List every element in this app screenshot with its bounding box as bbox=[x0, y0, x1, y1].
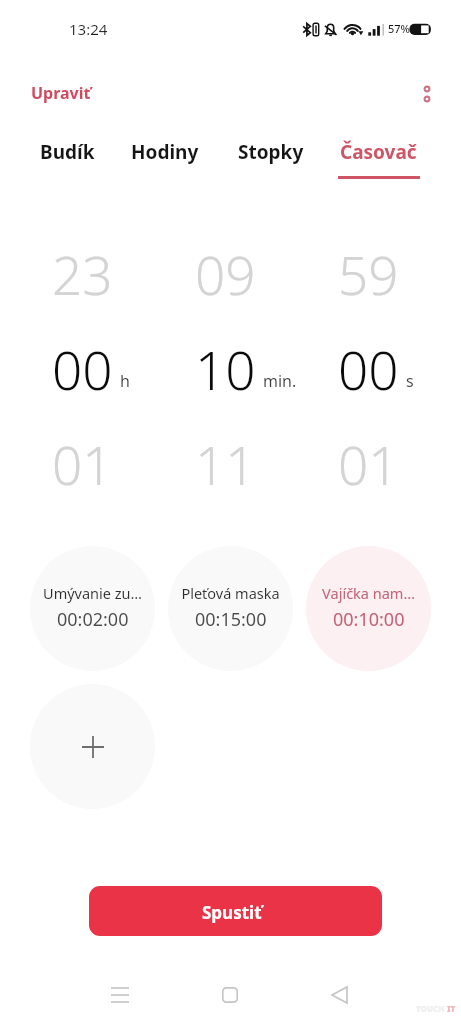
button[interactable]: 00 bbox=[308, 329, 428, 409]
button[interactable]: 23 bbox=[22, 234, 142, 314]
staticText: 00 bbox=[338, 333, 399, 405]
staticText: Umývanie zu… bbox=[43, 583, 142, 603]
staticText: Časovač bbox=[340, 139, 417, 165]
button[interactable]: Stopky bbox=[226, 130, 315, 182]
staticText: 09 bbox=[195, 238, 256, 310]
button[interactable]: Vajíčka nam… bbox=[306, 546, 431, 671]
staticText: Stopky bbox=[238, 139, 304, 165]
staticText: Upraviť bbox=[31, 82, 91, 104]
button[interactable]: 00 bbox=[22, 329, 142, 409]
staticText: min. bbox=[263, 370, 297, 392]
staticText: 00:02:00 bbox=[57, 607, 129, 632]
button[interactable]: 11 bbox=[165, 424, 285, 504]
staticText: 11 bbox=[195, 428, 256, 500]
staticText: 13:24 bbox=[69, 19, 108, 39]
staticText: h bbox=[120, 370, 130, 392]
button[interactable]: 59 bbox=[308, 234, 428, 314]
staticText: Spustiť bbox=[202, 901, 262, 924]
button[interactable]: 01 bbox=[22, 424, 142, 504]
button[interactable]: Back bbox=[317, 973, 361, 1017]
staticText: Pleťová maska bbox=[181, 583, 280, 603]
button[interactable]: 01 bbox=[308, 424, 428, 504]
staticText: Budík bbox=[40, 139, 95, 165]
button[interactable]: Recent apps bbox=[98, 973, 142, 1017]
staticText: 57% bbox=[388, 21, 410, 36]
button[interactable]: 10 bbox=[165, 329, 285, 409]
button[interactable]: Umývanie zu… bbox=[30, 546, 155, 671]
button[interactable]: Upraviť bbox=[17, 73, 105, 113]
staticText: IT bbox=[447, 1003, 456, 1014]
staticText: s bbox=[406, 370, 414, 392]
button[interactable]: Časovač bbox=[326, 130, 431, 182]
button[interactable]: Add timer bbox=[30, 684, 155, 809]
staticText: 10 bbox=[195, 333, 256, 405]
staticText: 59 bbox=[338, 238, 399, 310]
button[interactable]: Budík bbox=[29, 130, 106, 182]
staticText: 00:10:00 bbox=[333, 607, 405, 632]
staticText: 00:15:00 bbox=[195, 607, 267, 632]
button[interactable]: Pleťová maska bbox=[168, 546, 293, 671]
staticText: Hodiny bbox=[131, 139, 199, 165]
button[interactable]: More options bbox=[405, 72, 449, 116]
staticText: TOUCH bbox=[416, 1003, 445, 1014]
staticText: 01 bbox=[338, 428, 399, 500]
button[interactable]: Spustiť bbox=[89, 886, 382, 936]
staticText: Vajíčka nam… bbox=[322, 583, 415, 603]
staticText: 23 bbox=[52, 238, 113, 310]
staticText: 01 bbox=[52, 428, 113, 500]
button[interactable]: Home bbox=[208, 973, 252, 1017]
staticText: 00 bbox=[52, 333, 113, 405]
button[interactable]: Hodiny bbox=[120, 130, 210, 182]
button[interactable]: 09 bbox=[165, 234, 285, 314]
